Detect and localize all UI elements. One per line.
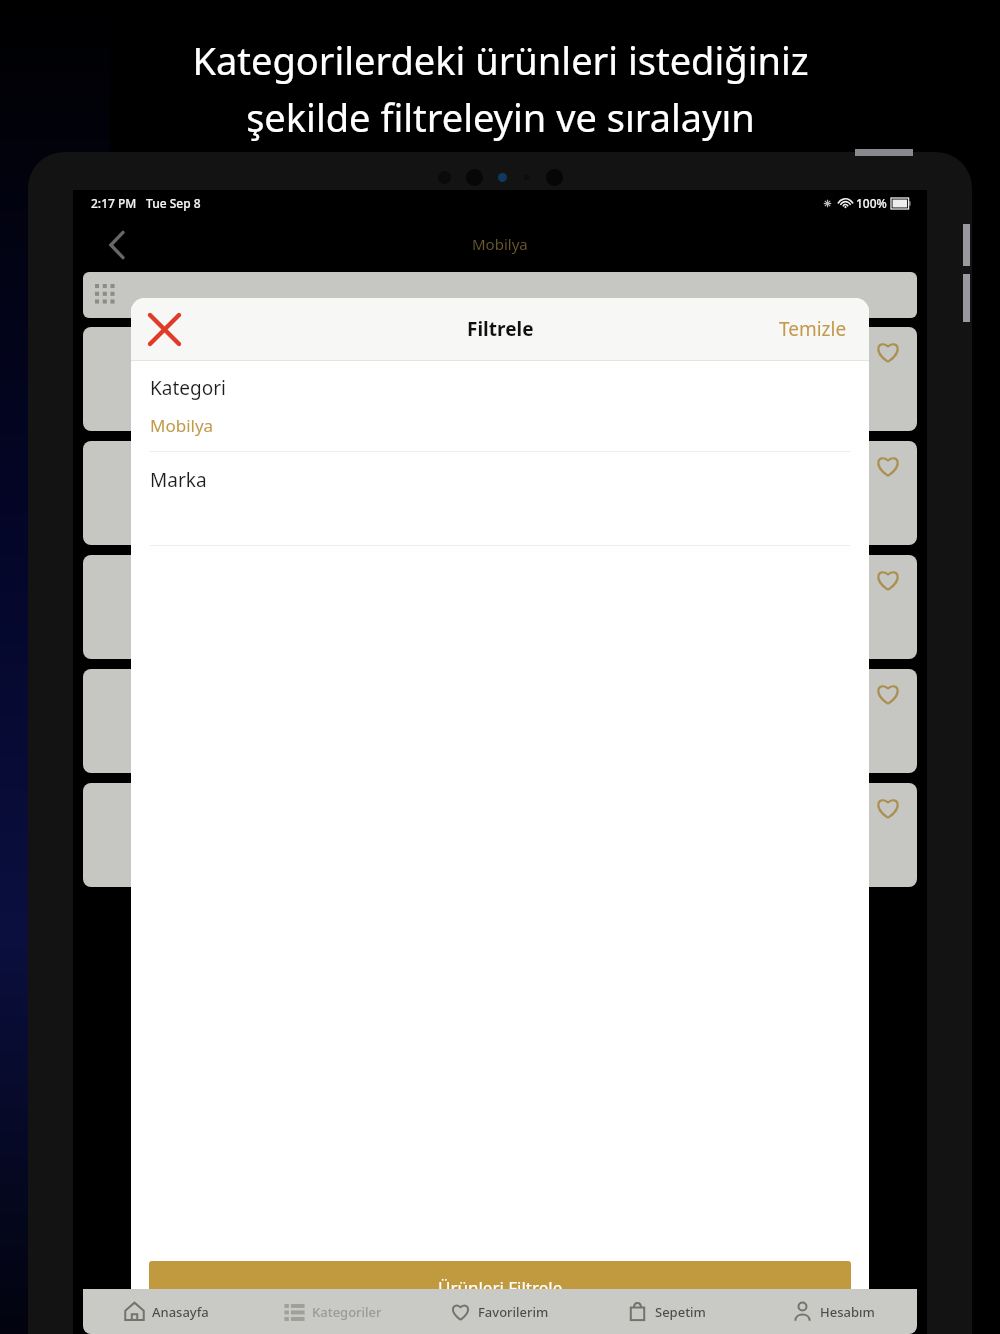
staticText: Mobilya [472,234,528,254]
button[interactable]: Hesabım [750,1289,917,1334]
staticText: Ürünleri Filtrele [438,1276,563,1299]
staticText: Filtrele [467,316,534,342]
staticText: şekilde filtreleyin ve sıralayın [246,91,755,143]
staticText: Mobilya [150,414,214,437]
staticText: Temizle [779,316,847,342]
button[interactable]: Kategori [131,361,869,451]
button[interactable] [83,441,917,545]
button[interactable]: Sepetim [583,1289,750,1334]
button[interactable]: View options [83,272,917,318]
staticText: Anasayfa [152,1303,209,1321]
button[interactable]: Back [97,224,139,266]
staticText: Marka [150,467,207,493]
staticText: 2:17 PM [91,195,137,211]
button[interactable] [83,555,917,659]
staticText: Favorilerim [478,1303,549,1321]
button[interactable]: Close [135,300,193,358]
button[interactable]: Favorilerim [416,1289,583,1334]
button[interactable]: Ürünleri Filtrele [149,1261,851,1313]
button[interactable] [83,327,917,431]
button[interactable]: Temizle [757,300,869,358]
staticText: 100% [856,195,887,211]
staticText: Kategoriler [312,1303,382,1321]
staticText: Sepetim [655,1303,706,1321]
button[interactable]: Marka [131,452,869,545]
staticText: Tue Sep 8 [146,195,201,211]
button[interactable]: Anasayfa [83,1289,249,1334]
button[interactable]: Kategoriler [249,1289,416,1334]
button[interactable] [83,669,917,773]
staticText: Kategorilerdeki ürünleri istediğiniz [192,34,809,86]
staticText: Kategori [150,375,226,401]
button[interactable] [83,783,917,887]
staticText: Hesabım [820,1303,875,1321]
